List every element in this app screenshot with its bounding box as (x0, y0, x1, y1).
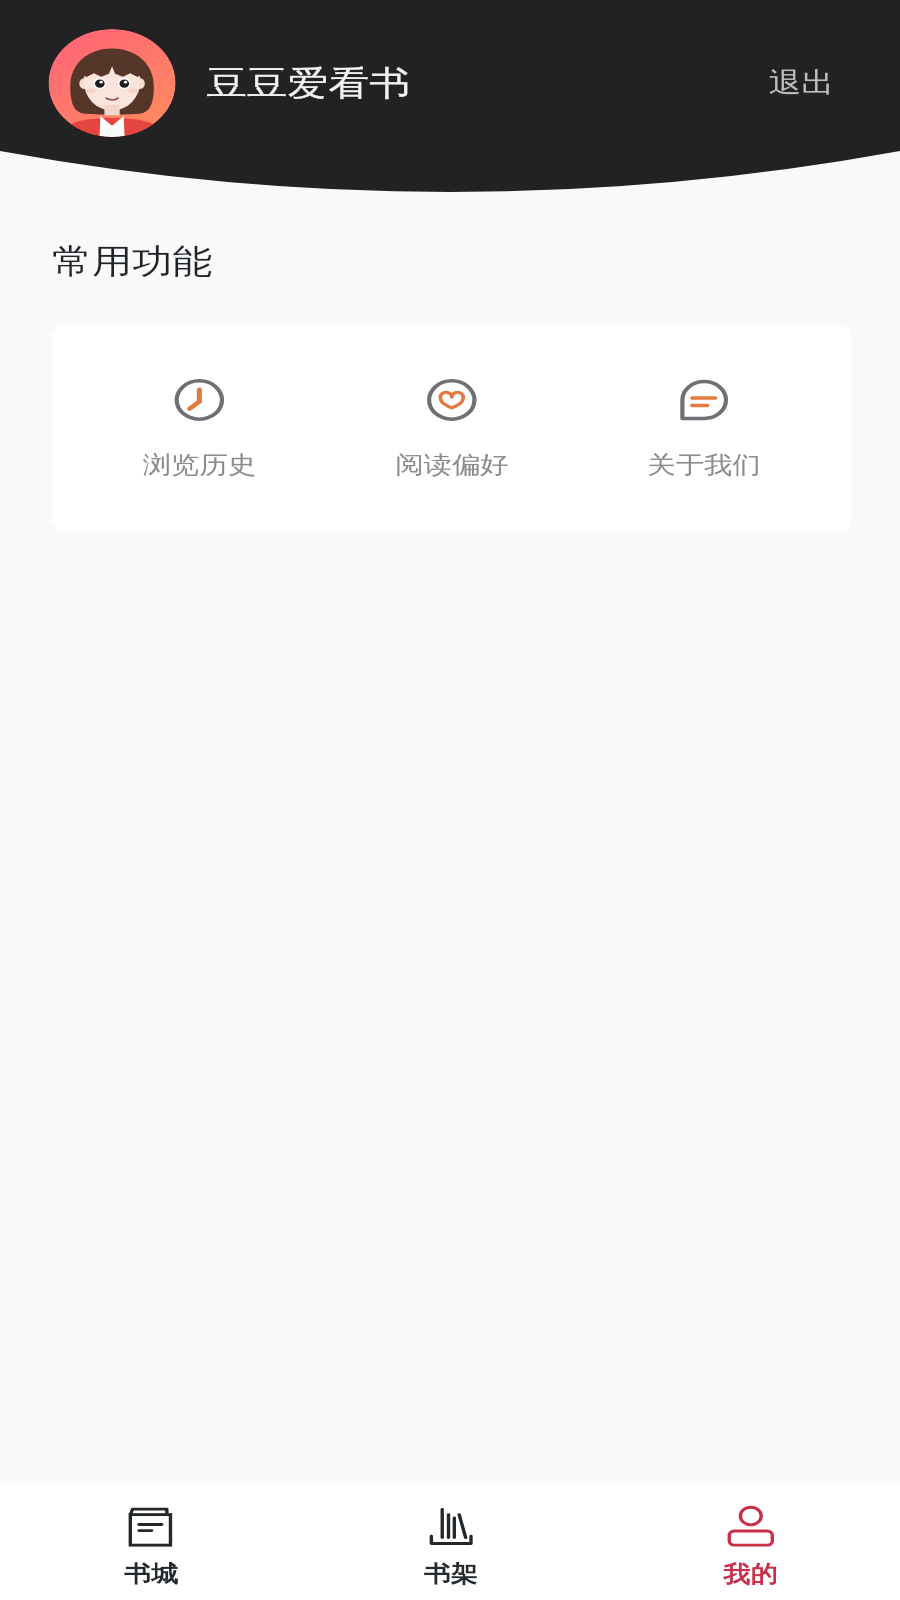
button[interactable]: 退出 (762, 56, 841, 111)
button[interactable]: 书架 (301, 1483, 600, 1600)
button[interactable]: 书城 (0, 1483, 301, 1600)
button[interactable]: 我的 (600, 1483, 900, 1600)
staticText: 阅读偏好 (395, 450, 508, 480)
button[interactable]: 关于我们 (578, 333, 830, 524)
button[interactable]: Profile picture (48, 29, 176, 137)
staticText: 常用功能 (52, 240, 212, 283)
staticText: 书架 (423, 1560, 478, 1586)
staticText: 豆豆爱看书 (206, 62, 410, 105)
staticText: 浏览历史 (143, 450, 256, 480)
staticText: 退出 (769, 66, 834, 101)
button[interactable]: 阅读偏好 (326, 333, 578, 524)
staticText: 关于我们 (648, 450, 761, 480)
button[interactable]: 浏览历史 (73, 333, 325, 524)
staticText: 书城 (124, 1560, 178, 1586)
staticText: 我的 (723, 1560, 777, 1586)
